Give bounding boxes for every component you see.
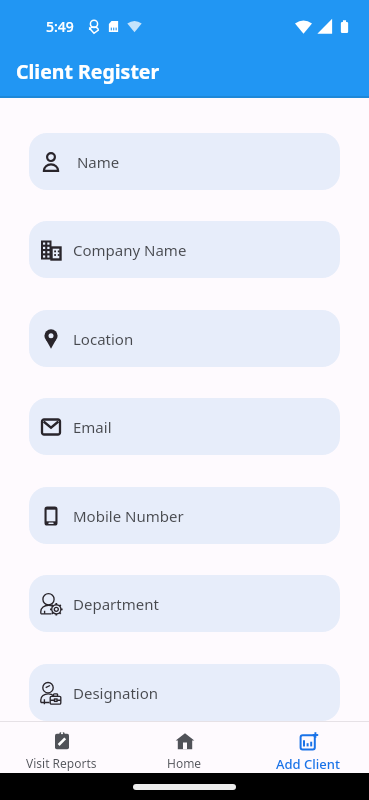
staticText: Visit Reports [26,755,97,771]
staticText: Name [73,152,120,172]
staticText: Mobile Number [73,506,184,526]
button[interactable]: Department [29,575,340,632]
staticText: Client Register [16,58,160,85]
staticText: Company Name [73,240,187,260]
button[interactable]: Email [29,398,340,455]
button[interactable]: Designation [29,664,340,721]
staticText: 5:49 [46,17,74,36]
staticText: Home [167,755,202,771]
staticText: Designation [73,683,159,703]
button[interactable]: Visit Reports [0,722,123,773]
staticText: Department [73,594,159,614]
staticText: Location [73,329,134,349]
button[interactable]: Name [29,133,340,190]
button[interactable]: Location [29,310,340,367]
staticText: Add Client [276,755,340,773]
button[interactable]: Add Client [246,722,369,773]
button[interactable]: Mobile Number [29,487,340,544]
staticText: Email [73,417,112,437]
button[interactable]: Home [123,722,246,773]
button[interactable]: Company Name [29,221,340,278]
